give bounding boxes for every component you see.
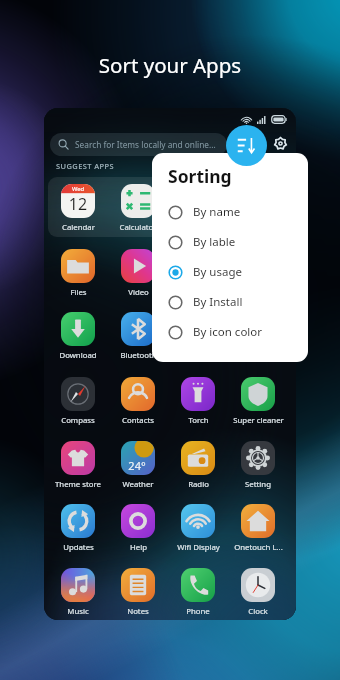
staticText: Calendar [62, 222, 95, 233]
button[interactable]: Compass [50, 377, 106, 426]
button[interactable]: Video [110, 249, 166, 298]
button[interactable]: 24° [110, 441, 166, 490]
staticText: Radio [188, 479, 209, 490]
button[interactable]: By lable [168, 227, 298, 257]
staticText: Sort your Apps [0, 51, 340, 79]
button[interactable]: By usage [168, 257, 298, 287]
staticText: Download [59, 350, 97, 361]
staticText: By lable [193, 234, 236, 250]
button[interactable]: Help [110, 504, 166, 553]
button[interactable]: By name [168, 197, 298, 227]
staticText: Setting [245, 479, 271, 490]
staticText: Updates [63, 542, 94, 553]
staticText: Torch [188, 415, 209, 426]
staticText: Clock [248, 606, 268, 617]
staticText: Super cleaner [233, 415, 284, 426]
button[interactable]: Phone [170, 568, 226, 617]
button[interactable]: Notes [110, 568, 166, 617]
button[interactable]: Clock [230, 568, 286, 617]
button[interactable]: Bluetooth [110, 312, 166, 361]
button[interactable]: Radio [170, 441, 226, 490]
button[interactable]: Setting [230, 441, 286, 490]
staticText: Notes [127, 606, 149, 617]
button[interactable]: Files [50, 249, 106, 298]
button[interactable]: Search for Items locally and online... [50, 133, 227, 156]
staticText: Help [130, 542, 147, 553]
button[interactable]: Torch [170, 377, 226, 426]
button[interactable]: By Install [168, 287, 298, 317]
staticText: By name [193, 204, 241, 220]
button[interactable]: Theme store [50, 441, 106, 490]
staticText: Video [128, 287, 149, 298]
staticText: Phone [186, 606, 210, 617]
staticText: Music [67, 606, 89, 617]
staticText: Onetouch L... [234, 542, 283, 553]
staticText: Bluetooth [120, 350, 157, 361]
staticText: Wifi Display [177, 542, 220, 553]
button[interactable]: Wed [50, 184, 106, 233]
staticText: Wed [61, 185, 95, 193]
staticText: 12 [61, 193, 95, 215]
button[interactable]: Settings [268, 131, 292, 155]
staticText: Compass [61, 415, 95, 426]
staticText: Search for Items locally and online... [75, 139, 216, 150]
button[interactable]: Onetouch L... [230, 504, 286, 553]
button[interactable]: Sort apps [226, 125, 267, 166]
staticText: Files [70, 287, 87, 298]
staticText: Contacts [122, 415, 154, 426]
button[interactable]: Download [50, 312, 106, 361]
staticText: SUGGEST APPS [56, 161, 115, 171]
staticText: Theme store [55, 479, 101, 490]
button[interactable]: Calculator [110, 184, 166, 233]
button[interactable]: Contacts [110, 377, 166, 426]
staticText: By Install [193, 294, 243, 310]
staticText: By usage [193, 264, 242, 280]
button[interactable]: By icon color [168, 317, 298, 347]
staticText: By icon color [193, 324, 263, 340]
staticText: Sorting [168, 164, 232, 188]
staticText: 24° [121, 458, 154, 473]
button[interactable]: Super cleaner [230, 377, 286, 426]
button[interactable]: Music [50, 568, 106, 617]
staticText: Weather [122, 479, 154, 490]
button[interactable]: Wifi Display [170, 504, 226, 553]
button[interactable]: Updates [50, 504, 106, 553]
staticText: Calculator [119, 222, 157, 233]
